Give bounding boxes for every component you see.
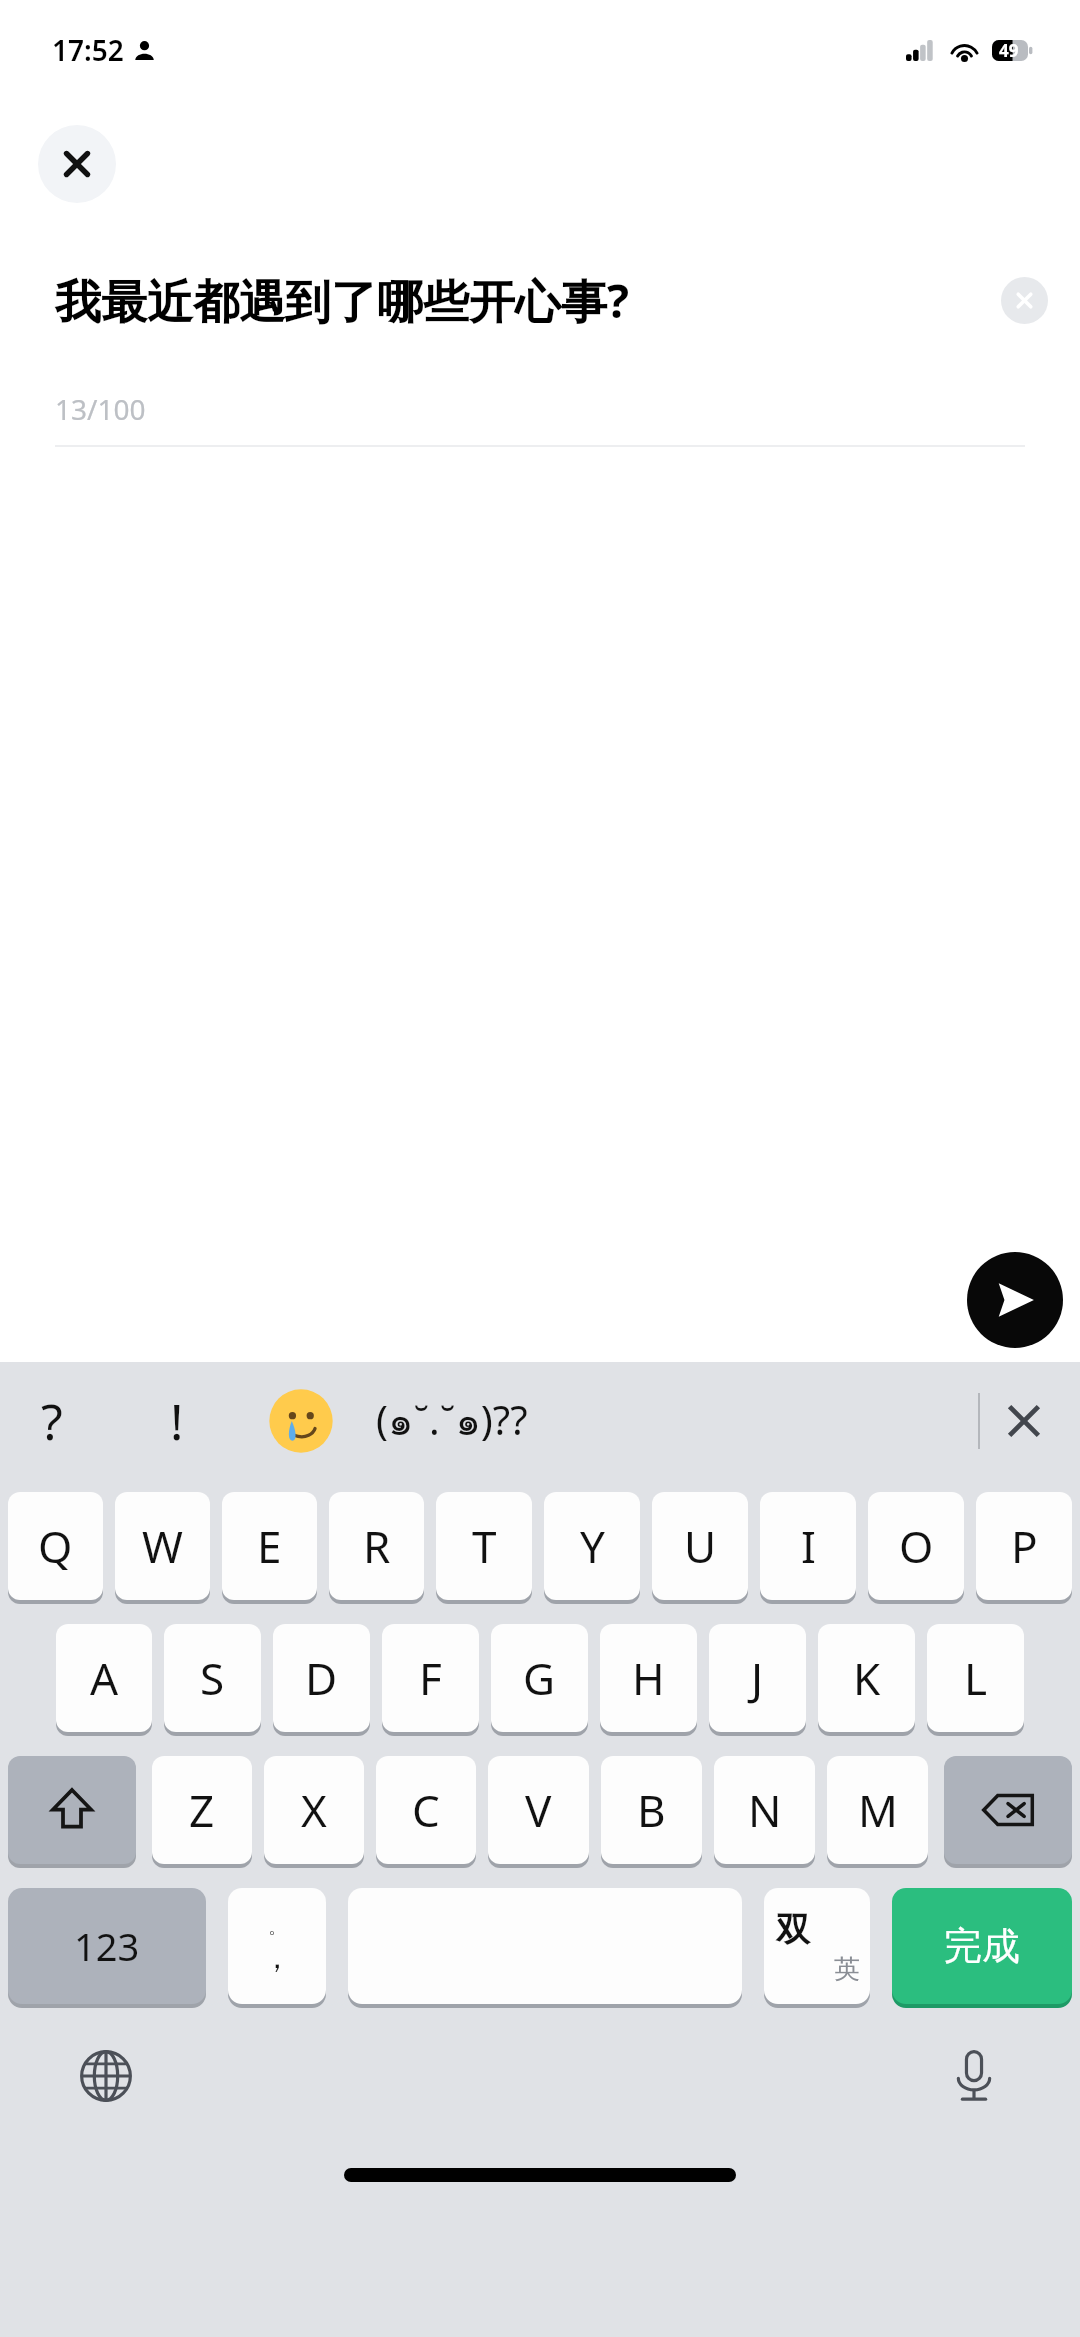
button[interactable]: Switch input	[764, 1888, 870, 2004]
staticText: 13/100	[55, 390, 146, 428]
button[interactable]: Y	[544, 1492, 640, 1600]
staticText: K	[853, 1648, 881, 1708]
staticText: (๑˘.˘๑)??	[376, 1389, 528, 1453]
staticText: Q	[38, 1516, 73, 1576]
staticText: H	[632, 1648, 665, 1708]
button[interactable]: Numbers	[8, 1888, 206, 2004]
button[interactable]: Close	[38, 125, 116, 203]
button[interactable]: A	[56, 1624, 152, 1732]
button[interactable]: Space	[348, 1888, 742, 2004]
staticText: ，	[262, 1939, 292, 1977]
staticText: U	[684, 1516, 717, 1576]
button[interactable]: Punctuation	[228, 1888, 326, 2004]
button[interactable]: 我最近都遇到了哪些开心事?	[55, 269, 629, 332]
button[interactable]: U	[652, 1492, 748, 1600]
button[interactable]: N	[714, 1756, 815, 1864]
button[interactable]: D	[273, 1624, 370, 1732]
button[interactable]: W	[115, 1492, 210, 1600]
staticText: 。	[268, 1916, 286, 1939]
button[interactable]: Send	[967, 1252, 1063, 1348]
button[interactable]: Voice input	[930, 2032, 1018, 2120]
staticText: J	[751, 1648, 764, 1708]
staticText: O	[899, 1516, 934, 1576]
button[interactable]: F	[382, 1624, 479, 1732]
staticText: N	[748, 1780, 782, 1840]
button[interactable]: C	[376, 1756, 476, 1864]
button[interactable]: Switch keyboard	[62, 2032, 150, 2120]
staticText: E	[257, 1516, 282, 1576]
staticText: R	[363, 1516, 391, 1576]
staticText: M	[858, 1780, 898, 1840]
staticText: 完成	[944, 1922, 1020, 1970]
button[interactable]: P	[976, 1492, 1072, 1600]
staticText: V	[525, 1780, 552, 1840]
button[interactable]: H	[600, 1624, 697, 1732]
staticText: 123	[74, 1920, 140, 1972]
button[interactable]: E	[222, 1492, 317, 1600]
button[interactable]: Clear text	[1001, 277, 1048, 324]
staticText: A	[90, 1648, 119, 1708]
button[interactable]: G	[491, 1624, 588, 1732]
button[interactable]: Done	[892, 1888, 1072, 2004]
staticText: 双	[776, 1908, 810, 1951]
button[interactable]: Shift	[8, 1756, 136, 1864]
button[interactable]: J	[709, 1624, 806, 1732]
button[interactable]: Z	[152, 1756, 252, 1864]
button[interactable]: !	[146, 1377, 208, 1465]
button[interactable]: O	[868, 1492, 964, 1600]
button[interactable]: B	[601, 1756, 702, 1864]
staticText: B	[637, 1780, 666, 1840]
staticText: 49	[999, 39, 1019, 62]
button[interactable]: Close suggestions	[980, 1377, 1068, 1465]
button[interactable]: (๑˘.˘๑)??	[368, 1377, 536, 1465]
button[interactable]: Backspace	[944, 1756, 1072, 1864]
staticText: !	[170, 1387, 184, 1455]
staticText: F	[419, 1648, 442, 1708]
button[interactable]: Crying emoji	[260, 1380, 342, 1462]
button[interactable]: X	[264, 1756, 364, 1864]
staticText: X	[301, 1780, 327, 1840]
staticText: 我最近都遇到了哪些开心事?	[55, 269, 629, 332]
button[interactable]: V	[488, 1756, 589, 1864]
staticText: W	[142, 1516, 183, 1576]
staticText: P	[1011, 1516, 1038, 1576]
button[interactable]: K	[818, 1624, 915, 1732]
button[interactable]: Q	[8, 1492, 103, 1600]
staticText: ?	[41, 1387, 63, 1455]
button[interactable]: ?	[16, 1377, 88, 1465]
button[interactable]: M	[827, 1756, 928, 1864]
button[interactable]: T	[436, 1492, 532, 1600]
button[interactable]: S	[164, 1624, 261, 1732]
staticText: 17:52	[52, 31, 124, 69]
staticText: D	[305, 1648, 338, 1708]
staticText: C	[412, 1780, 440, 1840]
button[interactable]: I	[760, 1492, 856, 1600]
button[interactable]: R	[329, 1492, 424, 1600]
staticText: S	[200, 1648, 225, 1708]
staticText: L	[964, 1648, 988, 1708]
staticText: Y	[580, 1516, 605, 1576]
staticText: I	[801, 1516, 816, 1576]
button[interactable]: L	[927, 1624, 1024, 1732]
staticText: 英	[834, 1953, 860, 1986]
staticText: Z	[189, 1780, 215, 1840]
staticText: G	[523, 1648, 556, 1708]
staticText: T	[472, 1516, 497, 1576]
